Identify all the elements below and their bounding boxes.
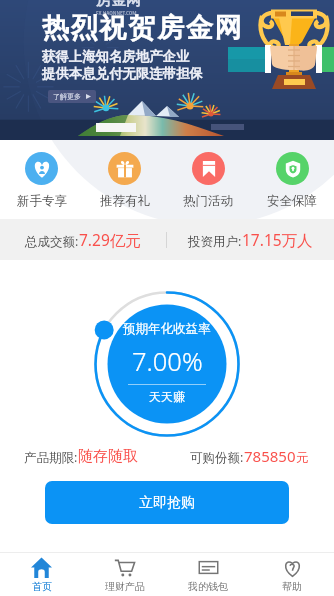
- staticText: 热门活动: [183, 193, 233, 209]
- button[interactable]: 了解更多: [53, 92, 91, 101]
- staticText: 我的钱包: [188, 580, 228, 593]
- staticText: 热烈祝贺房金网: [42, 11, 244, 45]
- staticText: 785850: [244, 446, 296, 466]
- staticText: 获得上海知名房地产企业: [42, 48, 190, 65]
- button[interactable]: 帮助: [250, 553, 334, 596]
- staticText: 理财产品: [105, 580, 145, 593]
- staticText: 随存随取: [78, 447, 138, 466]
- staticText: 推荐有礼: [100, 193, 150, 209]
- button[interactable]: 新手专享: [0, 140, 83, 219]
- staticText: 天天赚: [149, 389, 185, 404]
- staticText: 帮助: [282, 580, 302, 593]
- button[interactable]: 房金网: [0, 0, 334, 140]
- staticText: 元: [296, 450, 309, 466]
- button[interactable]: 理财产品: [83, 553, 166, 596]
- staticText: 可购份额:: [190, 449, 244, 466]
- button[interactable]: 安全保障: [250, 140, 334, 219]
- staticText: 产品期限:: [24, 449, 78, 466]
- staticText: 了解更多: [53, 92, 81, 101]
- staticText: 新手专享: [17, 193, 67, 209]
- button[interactable]: 推荐有礼: [83, 140, 166, 219]
- staticText: 7.29亿元: [79, 229, 141, 250]
- staticText: 提供本息兑付无限连带担保: [42, 65, 203, 82]
- staticText: 7.00%: [132, 344, 203, 379]
- button[interactable]: 我的钱包: [166, 553, 250, 596]
- staticText: FX.HAONNET.COM: [96, 10, 137, 16]
- button[interactable]: 立即抢购: [45, 481, 289, 524]
- button[interactable]: 首页: [0, 553, 83, 596]
- staticText: 安全保障: [267, 193, 317, 209]
- staticText: 投资用户:: [188, 233, 242, 250]
- staticText: 17.15万人: [242, 229, 313, 250]
- staticText: 预期年化收益率: [123, 321, 211, 337]
- staticText: 首页: [32, 580, 52, 593]
- staticText: 立即抢购: [139, 494, 195, 512]
- staticText: 总成交额:: [25, 233, 79, 250]
- button[interactable]: 热门活动: [166, 140, 250, 219]
- staticText: 房金网: [96, 0, 141, 10]
